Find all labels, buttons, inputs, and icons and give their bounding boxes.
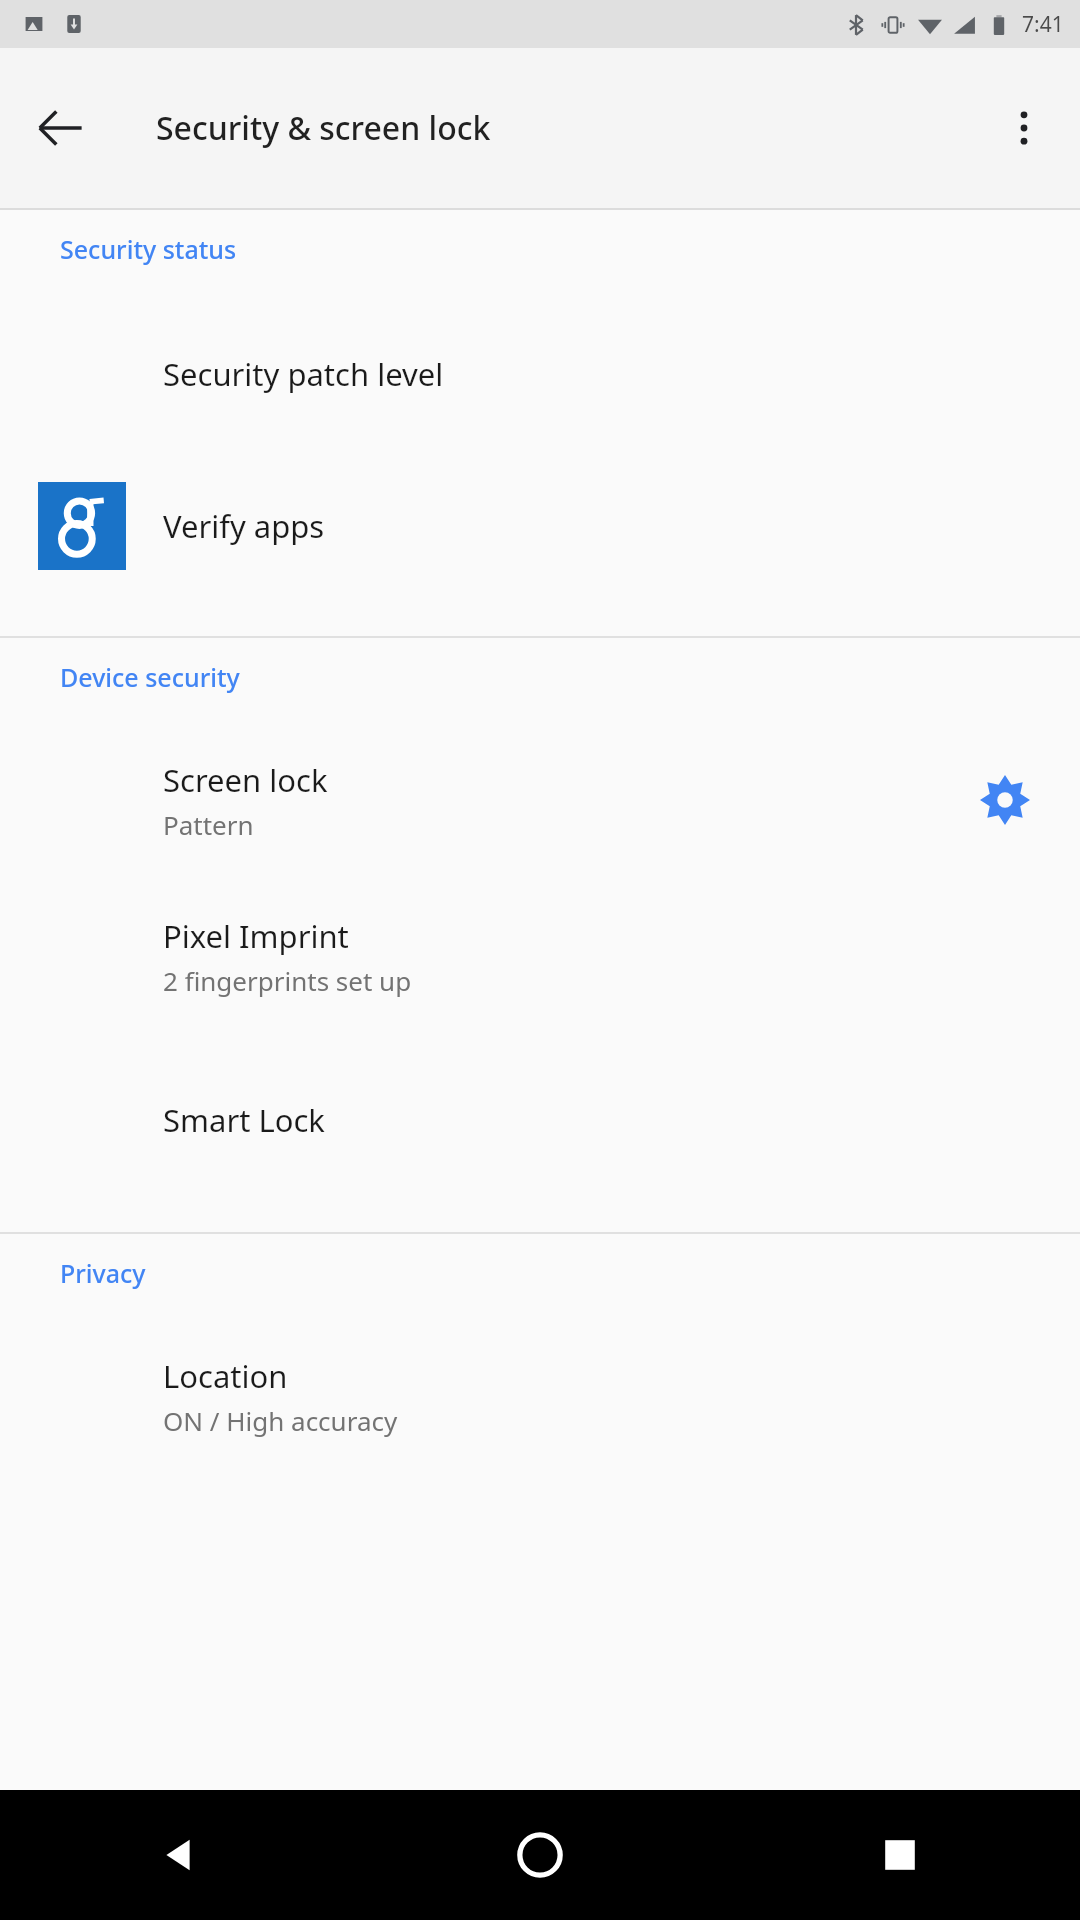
staticText: Smart Lock: [163, 1099, 325, 1141]
staticText: Device security: [60, 660, 240, 694]
staticText: Security patch level: [163, 353, 444, 395]
staticText: Screen lock: [163, 759, 328, 801]
button[interactable]: Screen lock settings: [957, 752, 1053, 848]
button[interactable]: Home: [360, 1790, 720, 1920]
button[interactable]: Verify apps: [0, 478, 1080, 574]
staticText: 7:41: [1022, 10, 1064, 39]
button[interactable]: More options: [982, 86, 1066, 170]
button[interactable]: Security patch level: [0, 326, 1080, 422]
staticText: ON / High accuracy: [163, 1403, 398, 1438]
staticText: Security status: [60, 232, 237, 266]
staticText: Location: [163, 1355, 288, 1397]
button[interactable]: Location: [0, 1338, 1080, 1454]
staticText: Pixel Imprint: [163, 915, 349, 957]
button[interactable]: Screen lock: [0, 742, 1080, 858]
button[interactable]: Back: [18, 86, 102, 170]
button[interactable]: Recents: [720, 1790, 1080, 1920]
staticText: Security & screen lock: [156, 106, 491, 150]
staticText: Verify apps: [163, 505, 325, 547]
button[interactable]: Smart Lock: [0, 1072, 1080, 1168]
button[interactable]: Pixel Imprint: [0, 898, 1080, 1014]
staticText: Privacy: [60, 1256, 146, 1290]
staticText: 2 fingerprints set up: [163, 963, 412, 998]
staticText: Pattern: [163, 807, 254, 842]
button[interactable]: Back: [0, 1790, 360, 1920]
